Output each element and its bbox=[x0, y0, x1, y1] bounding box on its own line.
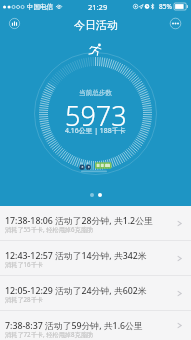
staticText: 消耗了16千卡 bbox=[5, 260, 44, 268]
staticText: 7:38-8:37 活动了59分钟, 共1.6公里 bbox=[5, 320, 143, 332]
staticText: 85% bbox=[159, 2, 172, 11]
button[interactable]: 12:05-12:29 活动了24分钟, 共602米 bbox=[0, 276, 191, 310]
staticText: 当前总步数 bbox=[79, 89, 112, 97]
staticText: 21:29 bbox=[88, 2, 108, 12]
staticText: 消耗了72千卡, 轻松甩掉8克脂肪 bbox=[5, 330, 94, 338]
button[interactable]: 7:38-8:37 活动了59分钟, 共1.6公里 bbox=[0, 311, 191, 340]
staticText: 消耗了55千卡, 轻松甩掉6克脂肪 bbox=[5, 225, 94, 233]
staticText: 4.16公里 | 188千卡 bbox=[65, 126, 126, 135]
button[interactable]: 12:43-12:57 活动了14分钟, 共342米 bbox=[0, 241, 191, 275]
button[interactable]: Statistics bbox=[4, 13, 25, 34]
staticText: 消耗了28千卡 bbox=[5, 295, 44, 303]
staticText: 17:38-18:06 活动了28分钟, 共1.2公里 bbox=[5, 215, 153, 227]
staticText: 今日活动 bbox=[74, 18, 118, 32]
button[interactable]: More options bbox=[165, 13, 186, 34]
staticText: 5973 bbox=[65, 97, 127, 134]
staticText: 12:43-12:57 活动了14分钟, 共342米 bbox=[5, 250, 147, 262]
staticText: 12:05-12:29 活动了24分钟, 共602米 bbox=[5, 285, 147, 297]
button[interactable]: 17:38-18:06 活动了28分钟, 共1.2公里 bbox=[0, 206, 191, 240]
staticText: 中国电信 bbox=[27, 3, 53, 11]
